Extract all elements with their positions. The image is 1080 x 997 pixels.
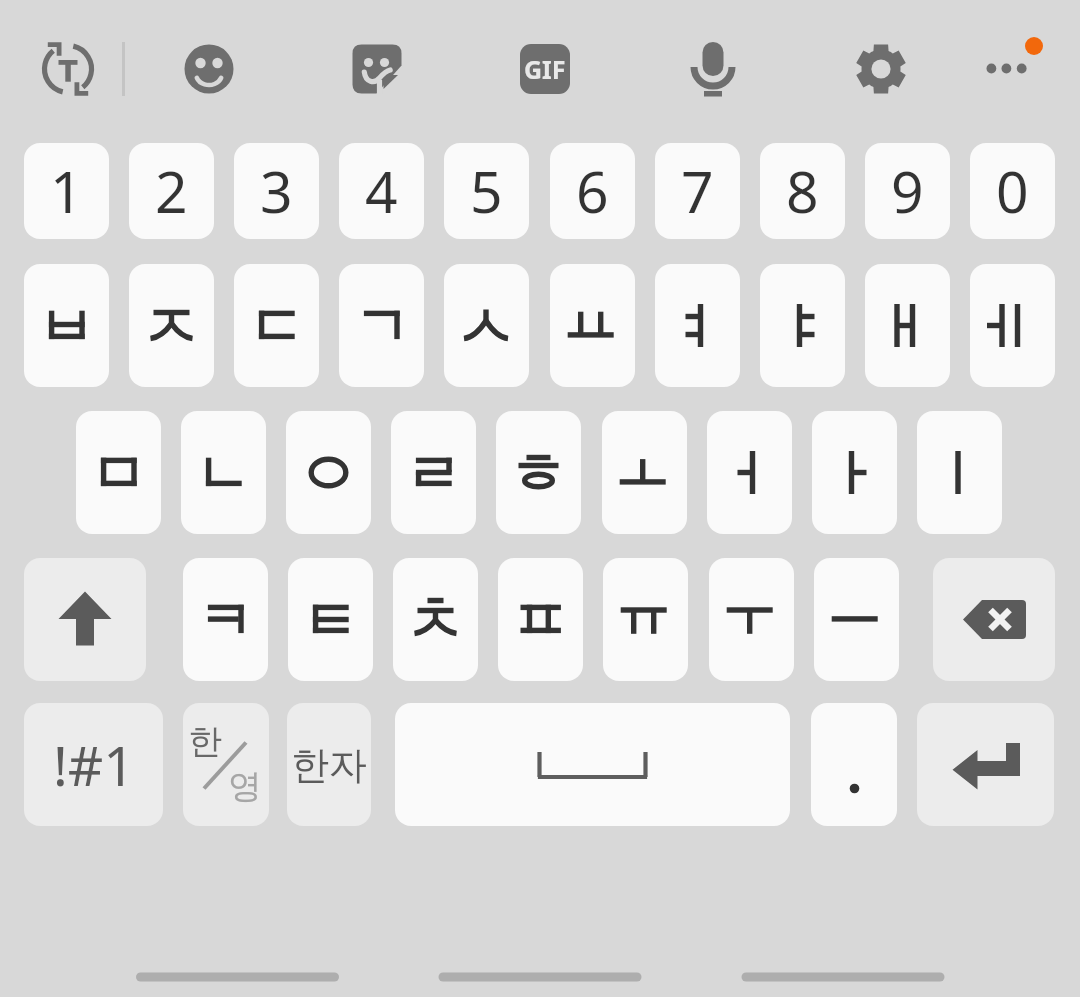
button[interactable]: Settings — [851, 39, 911, 99]
button[interactable] — [181, 411, 266, 534]
button[interactable]: 5 — [444, 143, 529, 239]
button[interactable] — [970, 264, 1055, 387]
button[interactable] — [709, 558, 794, 681]
button[interactable] — [812, 411, 897, 534]
button[interactable] — [814, 558, 899, 681]
button[interactable]: 2 — [129, 143, 214, 239]
button[interactable] — [917, 411, 1002, 534]
button[interactable]: More options — [966, 30, 1044, 100]
button[interactable] — [707, 411, 792, 534]
button[interactable]: Voice input — [683, 39, 743, 99]
button[interactable] — [234, 264, 319, 387]
button[interactable]: 7 — [655, 143, 740, 239]
button[interactable]: 0 — [970, 143, 1055, 239]
button[interactable] — [395, 703, 790, 826]
button[interactable] — [496, 411, 581, 534]
button[interactable]: Stickers — [347, 39, 407, 99]
staticText: 3 — [260, 152, 293, 230]
button[interactable] — [933, 558, 1055, 681]
button[interactable] — [24, 264, 109, 387]
button[interactable] — [288, 558, 373, 681]
button[interactable]: 8 — [760, 143, 845, 239]
button[interactable] — [811, 703, 897, 826]
button[interactable] — [550, 264, 635, 387]
button[interactable]: !#1 — [24, 703, 163, 826]
button[interactable]: 1 — [24, 143, 109, 239]
staticText: 8 — [786, 152, 819, 230]
button[interactable] — [24, 558, 146, 681]
button[interactable] — [444, 264, 529, 387]
staticText: 영 — [228, 765, 262, 808]
button[interactable]: GIF — [515, 39, 575, 99]
button[interactable]: 3 — [234, 143, 319, 239]
button[interactable] — [339, 264, 424, 387]
staticText: 7 — [681, 152, 714, 230]
button[interactable] — [393, 558, 478, 681]
button[interactable] — [391, 411, 476, 534]
button[interactable]: 6 — [550, 143, 635, 239]
button[interactable]: 9 — [865, 143, 950, 239]
button[interactable] — [603, 558, 688, 681]
staticText: !#1 — [53, 727, 135, 802]
staticText: 6 — [576, 152, 609, 230]
staticText: 2 — [155, 152, 188, 230]
staticText: 1 — [50, 152, 83, 230]
button[interactable] — [286, 411, 371, 534]
button[interactable] — [602, 411, 687, 534]
button[interactable]: Emoji — [179, 39, 239, 99]
staticText: 한자 — [291, 741, 367, 789]
staticText: 5 — [470, 152, 503, 230]
staticText: 한 — [188, 720, 222, 763]
staticText: 9 — [891, 152, 924, 230]
button[interactable] — [917, 703, 1054, 826]
button[interactable] — [498, 558, 583, 681]
button[interactable] — [865, 264, 950, 387]
button[interactable] — [655, 264, 740, 387]
staticText: GIF — [524, 52, 566, 86]
button[interactable]: 4 — [339, 143, 424, 239]
button[interactable] — [129, 264, 214, 387]
button[interactable]: Translate — [38, 39, 98, 99]
staticText: 4 — [365, 152, 398, 230]
button[interactable]: 한자 — [287, 703, 371, 826]
button[interactable] — [760, 264, 845, 387]
button[interactable] — [183, 558, 268, 681]
staticText: 0 — [996, 152, 1029, 230]
button[interactable]: 한 — [183, 703, 269, 826]
button[interactable] — [76, 411, 161, 534]
